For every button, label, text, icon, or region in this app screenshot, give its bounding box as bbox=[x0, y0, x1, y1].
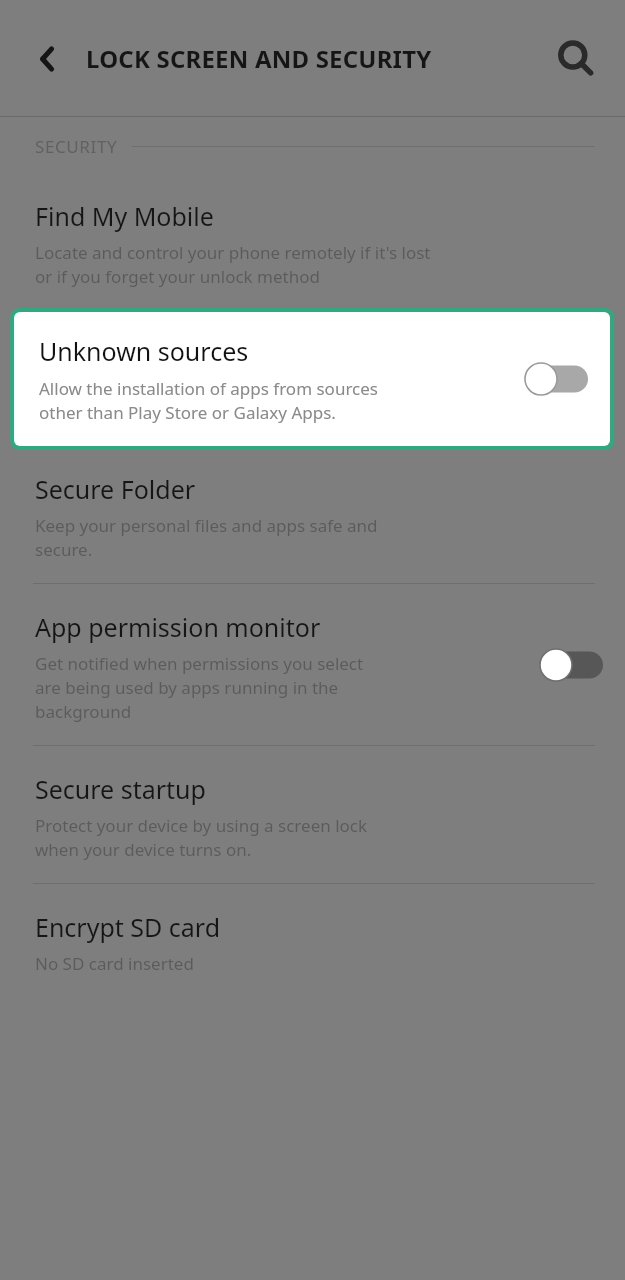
button[interactable]: Secure startup bbox=[0, 746, 625, 883]
button[interactable]: Back bbox=[18, 29, 78, 89]
staticText: Allow the installation of apps from sour… bbox=[39, 377, 378, 424]
staticText: App permission monitor bbox=[35, 610, 321, 644]
staticText: Secure Folder bbox=[35, 472, 196, 506]
button[interactable]: App permission monitor bbox=[0, 584, 625, 745]
staticText: LOCK SCREEN AND SECURITY bbox=[86, 42, 432, 75]
staticText: Get notified when permissions you select… bbox=[35, 652, 364, 723]
staticText: Keep your personal files and apps safe a… bbox=[35, 514, 378, 561]
staticText: Unknown sources bbox=[39, 334, 249, 368]
button[interactable]: Toggle bbox=[539, 648, 603, 682]
staticText: Protect your device by using a screen lo… bbox=[35, 814, 368, 861]
staticText: Find My Mobile bbox=[35, 199, 214, 233]
staticText: Locate and control your phone remotely i… bbox=[35, 241, 431, 288]
button[interactable]: Secure Folder bbox=[0, 450, 625, 583]
button[interactable]: Toggle bbox=[524, 362, 588, 396]
staticText: No SD card inserted bbox=[35, 952, 194, 975]
button[interactable]: Find My Mobile bbox=[0, 175, 625, 308]
button[interactable]: Encrypt SD card bbox=[0, 884, 625, 997]
staticText: SECURITY bbox=[35, 135, 118, 158]
staticText: Secure startup bbox=[35, 772, 206, 806]
staticText: Encrypt SD card bbox=[35, 910, 221, 944]
button[interactable]: Unknown sources bbox=[14, 312, 610, 446]
button[interactable]: Search bbox=[545, 28, 607, 90]
